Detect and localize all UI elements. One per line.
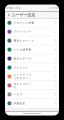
button[interactable]: ヘルプ xyxy=(5,90,59,99)
staticText: プライバシー xyxy=(13,30,31,33)
staticText: 通知とサウンド xyxy=(13,39,34,42)
button[interactable]: 表示とテーマ xyxy=(5,54,59,63)
button[interactable]: ストレージ xyxy=(5,63,59,72)
button[interactable]: 通知とサウンド xyxy=(5,36,59,45)
button[interactable]: 詳細設定 xyxy=(5,99,59,108)
staticText: 100% xyxy=(49,6,57,10)
staticText: データ使用量 xyxy=(13,48,31,51)
button[interactable]: Back xyxy=(7,12,10,17)
staticText: 強 xyxy=(13,85,16,89)
button[interactable]: プライバシー xyxy=(5,27,59,36)
staticText: 自動更新オン xyxy=(13,76,31,80)
staticText: バックアップ xyxy=(13,73,31,76)
button[interactable]: アカウント情報 xyxy=(5,18,59,27)
button[interactable]: バックアップ xyxy=(5,72,59,81)
staticText: セキュリティ xyxy=(13,82,31,85)
staticText: 詳細設定 xyxy=(13,102,25,105)
staticText: ヘルプ xyxy=(13,93,22,96)
staticText: ストレージ xyxy=(13,66,28,69)
staticText: 表示とテーマ xyxy=(13,57,31,60)
staticText: 9:41 xyxy=(7,6,14,10)
staticText: ユーザー設定 xyxy=(11,12,35,17)
button[interactable]: データ使用量 xyxy=(5,45,59,54)
button[interactable]: セキュリティ xyxy=(5,81,59,90)
staticText: アカウント情報 xyxy=(13,21,34,24)
